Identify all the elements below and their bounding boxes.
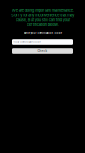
staticText: Write your Certification Code: [23, 32, 61, 35]
staticText: Check: [37, 49, 47, 53]
button[interactable]: Check: [12, 48, 73, 54]
staticText: Your Certificate Code: [13, 40, 40, 44]
staticText: We are doing important maintenance. Sorr…: [11, 8, 74, 27]
